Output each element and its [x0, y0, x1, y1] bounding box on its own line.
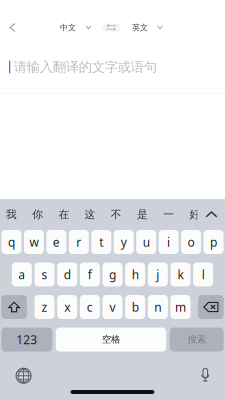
- staticText: 你: [32, 208, 43, 221]
- staticText: x: [64, 299, 70, 315]
- staticText: 123: [16, 331, 37, 347]
- staticText: o: [188, 234, 195, 250]
- staticText: y: [121, 234, 127, 250]
- staticText: i: [167, 234, 170, 250]
- staticText: 是: [137, 208, 148, 221]
- button[interactable]: y: [114, 230, 134, 254]
- button[interactable]: 是: [129, 199, 156, 230]
- button[interactable]: 好: [182, 199, 208, 230]
- button[interactable]: g: [102, 262, 122, 286]
- staticText: c: [87, 299, 93, 315]
- staticText: q: [8, 234, 15, 250]
- button[interactable]: m: [170, 295, 190, 319]
- button[interactable]: More suggestions: [198, 199, 225, 230]
- button[interactable]: v: [102, 295, 122, 319]
- button[interactable]: t: [91, 230, 111, 254]
- staticText: h: [132, 266, 139, 282]
- staticText: 一: [163, 208, 174, 221]
- staticText: d: [64, 266, 71, 282]
- button[interactable]: d: [57, 262, 77, 286]
- staticText: 空格: [102, 334, 120, 345]
- staticText: b: [132, 299, 139, 315]
- staticText: v: [109, 299, 115, 315]
- button[interactable]: b: [125, 295, 145, 319]
- staticText: 请输入翻译的文字或语句: [14, 59, 157, 75]
- button[interactable]: Delete: [198, 295, 224, 319]
- button[interactable]: s: [34, 262, 54, 286]
- button[interactable]: Next keyboard: [9, 361, 39, 391]
- button[interactable]: q: [1, 230, 21, 254]
- button[interactable]: 这: [77, 199, 103, 230]
- button[interactable]: Swap languages: [102, 23, 121, 32]
- button[interactable]: a: [12, 262, 32, 286]
- button[interactable]: 一: [156, 199, 182, 230]
- button[interactable]: z: [34, 295, 54, 319]
- staticText: 在: [58, 208, 69, 221]
- staticText: 英文: [132, 23, 148, 32]
- staticText: t: [99, 234, 103, 250]
- staticText: 这: [85, 208, 96, 221]
- staticText: 中文: [60, 23, 76, 32]
- button[interactable]: 我: [0, 199, 25, 230]
- staticText: l: [202, 266, 205, 282]
- staticText: p: [210, 234, 217, 250]
- button[interactable]: o: [181, 230, 201, 254]
- button[interactable]: k: [170, 262, 190, 286]
- button[interactable]: i: [159, 230, 179, 254]
- staticText: 不: [111, 208, 122, 221]
- button[interactable]: l: [193, 262, 213, 286]
- staticText: a: [18, 266, 25, 282]
- button[interactable]: c: [80, 295, 100, 319]
- button[interactable]: x: [57, 295, 77, 319]
- staticText: 我: [6, 208, 17, 221]
- button[interactable]: Back: [0, 14, 24, 40]
- button[interactable]: 不: [103, 199, 129, 230]
- button[interactable]: 中文: [57, 16, 94, 38]
- staticText: u: [143, 234, 150, 250]
- staticText: 好: [189, 208, 200, 221]
- staticText: e: [53, 234, 60, 250]
- staticText: f: [88, 266, 92, 282]
- staticText: w: [29, 234, 38, 250]
- button[interactable]: 你: [25, 199, 51, 230]
- button[interactable]: r: [69, 230, 89, 254]
- staticText: s: [41, 266, 47, 282]
- button[interactable]: 123: [1, 327, 52, 351]
- button[interactable]: n: [148, 295, 168, 319]
- button[interactable]: w: [24, 230, 44, 254]
- button[interactable]: f: [80, 262, 100, 286]
- staticText: m: [175, 299, 186, 315]
- button[interactable]: 英文: [129, 16, 166, 38]
- button[interactable]: 搜索: [170, 327, 224, 351]
- staticText: g: [109, 266, 116, 282]
- staticText: n: [154, 299, 161, 315]
- staticText: k: [177, 266, 183, 282]
- button[interactable]: 在: [51, 199, 77, 230]
- button[interactable]: p: [203, 230, 223, 254]
- button[interactable]: Shift: [1, 295, 27, 319]
- button[interactable]: u: [136, 230, 156, 254]
- staticText: j: [156, 266, 159, 282]
- staticText: r: [76, 234, 81, 250]
- button[interactable]: h: [125, 262, 145, 286]
- staticText: z: [41, 299, 47, 315]
- staticText: 搜索: [188, 334, 206, 345]
- button[interactable]: j: [148, 262, 168, 286]
- button[interactable]: Dictation: [190, 361, 220, 391]
- button[interactable]: 空格: [56, 327, 166, 351]
- button[interactable]: e: [46, 230, 66, 254]
